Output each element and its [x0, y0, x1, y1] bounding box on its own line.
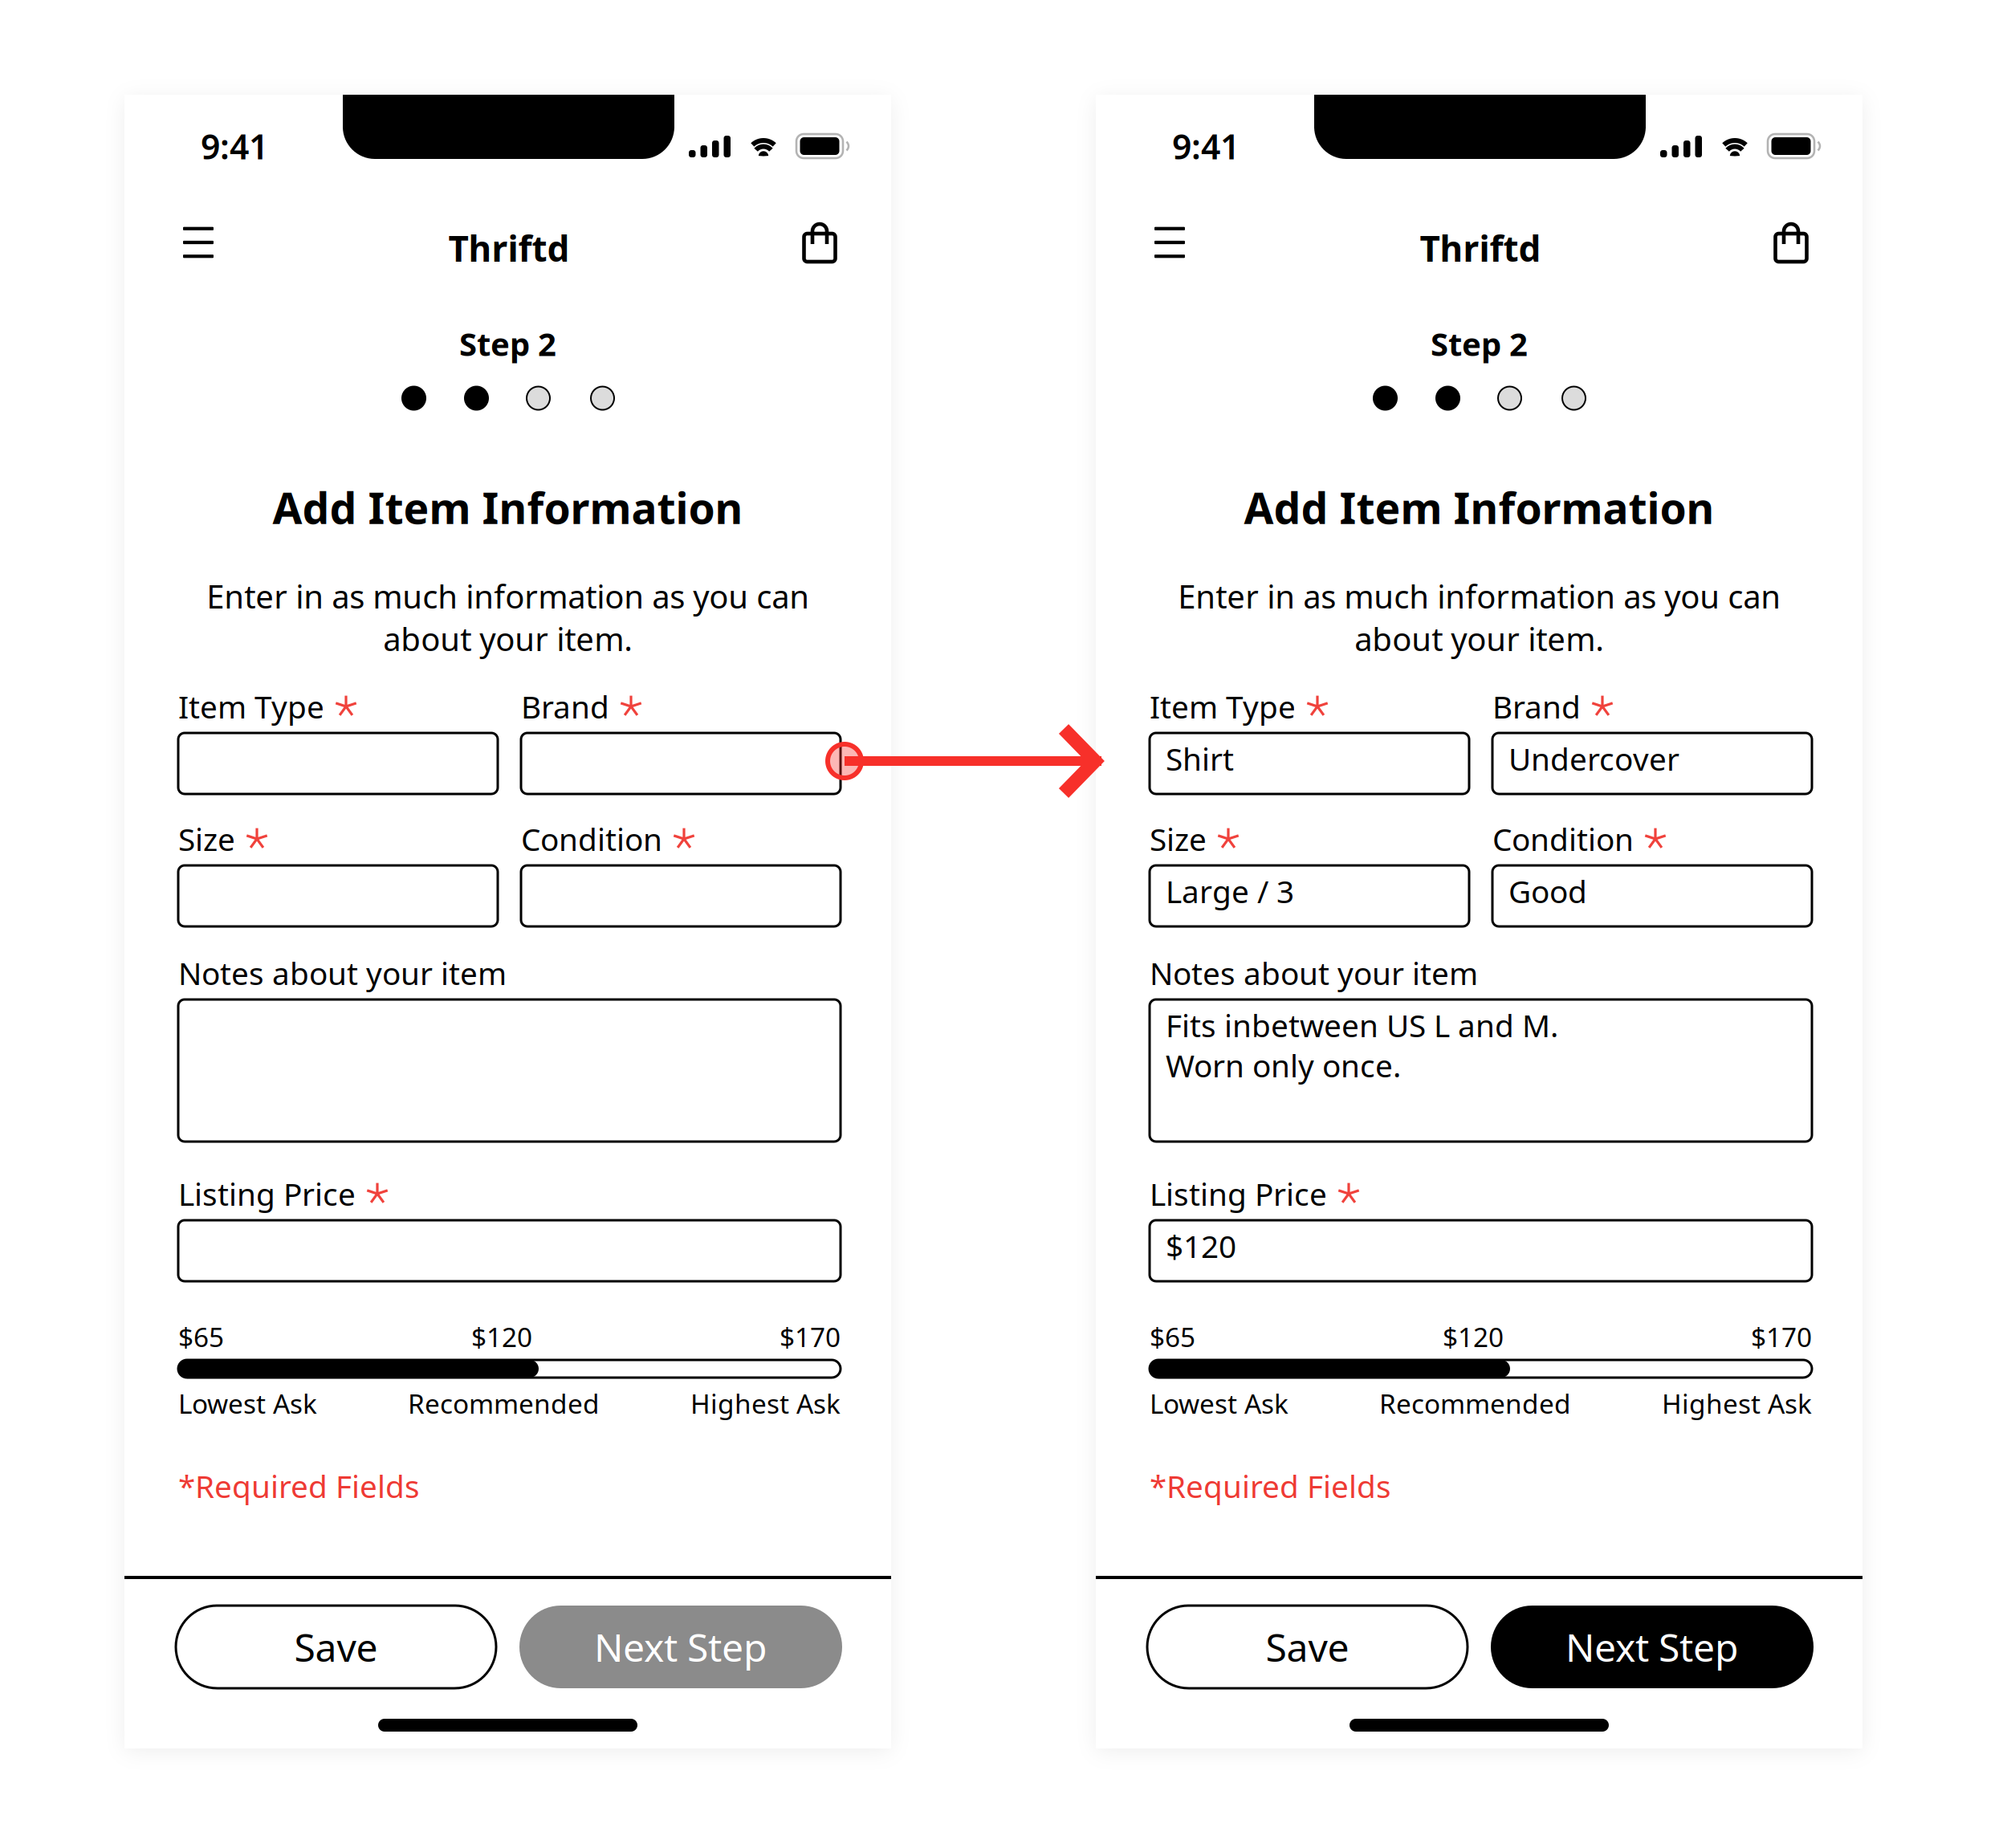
staticText: Enter in as much information as you can … [206, 575, 809, 660]
staticText: $170 [1751, 1319, 1812, 1354]
button[interactable]: Next Step [1491, 1606, 1814, 1688]
staticText: 9:41 [201, 123, 268, 169]
staticText: Lowest Ask [178, 1386, 317, 1421]
staticText: Recommended [1379, 1386, 1571, 1421]
button[interactable]: Save [1147, 1606, 1468, 1688]
button[interactable]: Save [176, 1606, 496, 1688]
staticText: Thriftd [448, 225, 570, 272]
staticText: Undercover [1508, 738, 1679, 779]
button[interactable]: Menu [1138, 198, 1202, 287]
staticText: Large / 3 [1166, 870, 1294, 912]
staticText: Notes about your item [178, 952, 507, 994]
staticText: Step 2 [1431, 322, 1528, 365]
staticText: $120 [1166, 1225, 1236, 1266]
button[interactable]: Menu [166, 198, 230, 287]
staticText: Highest Ask [690, 1386, 841, 1421]
staticText: Brand [521, 686, 609, 727]
staticText: Listing Price [178, 1173, 356, 1214]
staticText: Worn only once. [1166, 1045, 1401, 1086]
staticText: Add Item Information [1244, 479, 1714, 536]
staticText: Thriftd [1420, 225, 1541, 272]
staticText: Item Type [178, 686, 324, 727]
staticText: *Required Fields [178, 1465, 420, 1506]
staticText: Notes about your item [1150, 952, 1478, 994]
staticText: Good [1508, 870, 1587, 912]
staticText: Shirt [1166, 738, 1234, 779]
staticText: Item Type [1150, 686, 1296, 727]
staticText: Listing Price [1150, 1173, 1327, 1214]
staticText: Add Item Information [273, 479, 743, 536]
staticText: Condition [1492, 818, 1634, 859]
staticText: Next Step [1565, 1621, 1739, 1672]
staticText: Condition [521, 818, 662, 859]
staticText: Size [1150, 818, 1207, 859]
staticText: $65 [1150, 1319, 1195, 1354]
staticText: Enter in as much information as you can … [1178, 575, 1781, 660]
button[interactable]: Shopping bag [788, 198, 852, 287]
staticText: Highest Ask [1662, 1386, 1812, 1421]
button[interactable]: Next Step [519, 1606, 842, 1688]
staticText: Save [294, 1621, 378, 1672]
staticText: 9:41 [1172, 123, 1240, 169]
staticText: $170 [780, 1319, 841, 1354]
staticText: Fits inbetween US L and M. [1166, 1005, 1558, 1046]
staticText: Step 2 [459, 322, 556, 365]
staticText: Next Step [594, 1621, 767, 1672]
staticText: Size [178, 818, 235, 859]
staticText: $65 [178, 1319, 224, 1354]
button[interactable]: Shopping bag [1759, 198, 1823, 287]
staticText: Recommended [408, 1386, 600, 1421]
staticText: $120 [1443, 1319, 1504, 1354]
staticText: Lowest Ask [1150, 1386, 1288, 1421]
staticText: $120 [471, 1319, 532, 1354]
staticText: Brand [1492, 686, 1581, 727]
staticText: Save [1266, 1621, 1349, 1672]
staticText: *Required Fields [1150, 1465, 1391, 1506]
